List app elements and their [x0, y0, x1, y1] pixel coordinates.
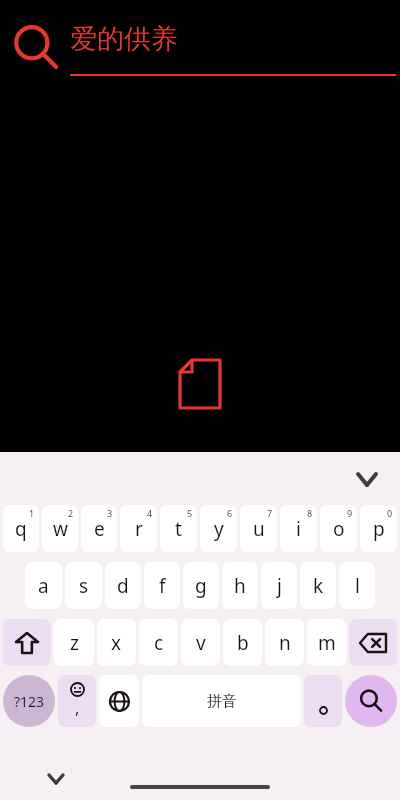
staticText: a [38, 573, 49, 599]
staticText: ?123 [14, 692, 45, 711]
staticText: p [373, 516, 385, 542]
staticText: 5 [187, 507, 193, 519]
button[interactable]: b [223, 619, 262, 666]
button[interactable]: n [265, 619, 304, 666]
button[interactable]: c [139, 619, 178, 666]
staticText: 7 [267, 507, 273, 519]
button[interactable]: Search [345, 675, 397, 727]
staticText: b [237, 630, 249, 656]
button[interactable]: Period [304, 675, 342, 727]
button[interactable]: ?123 [3, 675, 55, 727]
staticText: x [111, 630, 122, 656]
button[interactable]: t [160, 505, 197, 552]
button[interactable]: d [105, 562, 141, 609]
button[interactable]: k [300, 562, 336, 609]
button[interactable]: s [65, 562, 102, 609]
staticText: 拼音 [207, 692, 237, 711]
staticText: c [154, 630, 164, 656]
staticText: g [195, 573, 207, 599]
staticText: q [15, 516, 27, 542]
button[interactable]: Back [40, 763, 72, 795]
button[interactable]: g [183, 562, 219, 609]
staticText: s [79, 573, 89, 599]
button[interactable]: h [222, 562, 258, 609]
staticText: 0 [387, 507, 393, 519]
staticText: z [70, 630, 79, 656]
staticText: , [75, 697, 80, 719]
staticText: 6 [227, 507, 233, 519]
staticText: r [135, 516, 143, 542]
staticText: u [253, 516, 265, 542]
button[interactable]: Hide keyboard [350, 462, 384, 496]
button[interactable]: Emoji and comma [58, 675, 96, 727]
staticText: m [318, 630, 336, 656]
staticText: e [94, 516, 105, 542]
button[interactable]: r [120, 505, 157, 552]
staticText: 9 [347, 507, 353, 519]
button[interactable]: j [261, 562, 297, 609]
staticText: 1 [29, 507, 35, 519]
staticText: i [296, 516, 301, 542]
button[interactable]: u [240, 505, 277, 552]
button[interactable]: Search [10, 22, 62, 74]
staticText: n [279, 630, 291, 656]
staticText: 3 [107, 507, 113, 519]
staticText: y [214, 516, 224, 542]
button[interactable]: l [339, 562, 375, 609]
button[interactable]: i [280, 505, 317, 552]
button[interactable]: m [307, 619, 346, 666]
staticText: t [175, 516, 182, 542]
staticText: o [333, 516, 345, 542]
staticText: h [234, 573, 246, 599]
button[interactable]: p [360, 505, 397, 552]
button[interactable]: o [320, 505, 357, 552]
button[interactable]: 拼音 [142, 675, 301, 727]
staticText: 爱的供养 [70, 22, 178, 56]
button[interactable]: y [200, 505, 237, 552]
button[interactable]: z [54, 619, 94, 666]
button[interactable]: x [97, 619, 136, 666]
staticText: f [159, 573, 166, 599]
button[interactable]: f [144, 562, 180, 609]
button[interactable]: q [3, 505, 39, 552]
button[interactable]: e [81, 505, 117, 552]
button[interactable]: Shift [3, 619, 51, 666]
staticText: j [277, 573, 282, 599]
staticText: l [355, 573, 360, 599]
button[interactable]: v [181, 619, 220, 666]
button[interactable]: a [25, 562, 62, 609]
staticText: v [196, 630, 206, 656]
staticText: 4 [147, 507, 153, 519]
staticText: 2 [68, 507, 74, 519]
staticText: w [53, 516, 68, 542]
button[interactable] [130, 785, 270, 789]
button[interactable]: w [42, 505, 78, 552]
staticText: k [313, 573, 324, 599]
staticText: d [117, 573, 129, 599]
button[interactable]: Backspace [349, 619, 397, 666]
staticText: 8 [307, 507, 313, 519]
button[interactable]: Change language [99, 675, 139, 727]
